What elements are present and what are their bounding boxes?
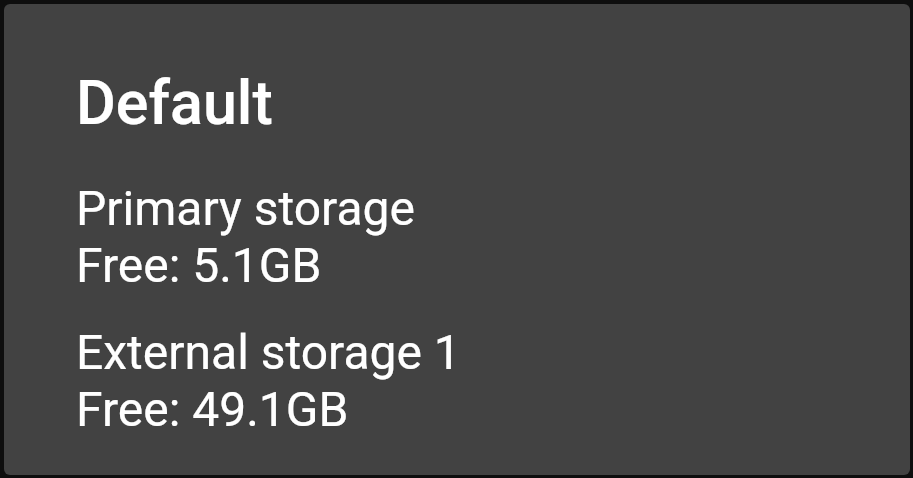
staticText: Free: 49.1GB: [76, 381, 349, 437]
staticText: Primary storage: [76, 180, 415, 236]
staticText: Free: 5.1GB: [76, 237, 322, 293]
button[interactable]: Primary storage: [4, 176, 910, 297]
staticText: Default: [76, 67, 273, 138]
button[interactable]: External storage 1: [4, 320, 910, 441]
staticText: External storage 1: [76, 324, 461, 380]
